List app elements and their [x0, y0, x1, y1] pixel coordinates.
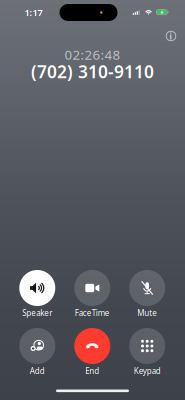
staticText: i [169, 30, 172, 42]
staticText: 02:26:48 [64, 46, 120, 63]
staticText: Speaker [22, 308, 52, 318]
button[interactable]: Keypad [121, 328, 173, 389]
staticText: 1:17 [24, 6, 42, 19]
staticText: Keypad [134, 366, 161, 376]
staticText: Mute [137, 308, 157, 318]
button[interactable]: Speaker [11, 270, 63, 331]
button[interactable]: Call details [159, 24, 183, 48]
button[interactable]: Add [11, 328, 63, 389]
button[interactable]: Mute [121, 270, 173, 331]
button[interactable]: FaceTime [66, 270, 118, 331]
button[interactable]: End [66, 328, 118, 389]
staticText: Add [30, 366, 45, 376]
staticText: End [85, 366, 99, 376]
staticText: FaceTime [75, 308, 110, 318]
staticText: (702) 310-9110 [31, 60, 154, 83]
